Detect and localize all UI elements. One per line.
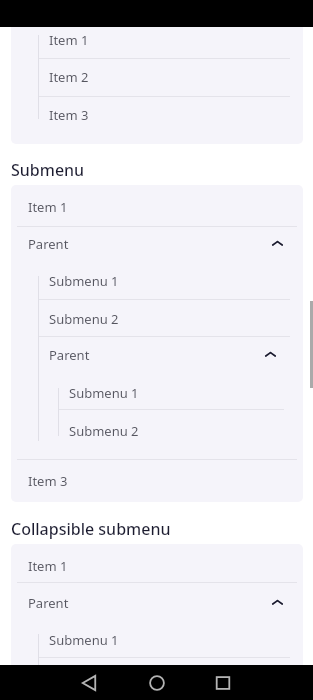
button[interactable]: Home bbox=[143, 669, 171, 697]
staticText: Submenu 1 bbox=[69, 384, 139, 402]
button[interactable]: Submenu 1 bbox=[11, 621, 303, 658]
button[interactable]: Submenu 1 bbox=[11, 374, 303, 411]
button[interactable]: Parent bbox=[11, 225, 303, 262]
staticText: Submenu 1 bbox=[49, 272, 119, 290]
staticText: Submenu 2 bbox=[69, 422, 139, 440]
button[interactable]: Parent bbox=[11, 336, 303, 373]
button[interactable]: Submenu 1 bbox=[11, 262, 303, 299]
staticText: Item 1 bbox=[28, 198, 68, 216]
button[interactable]: Back bbox=[75, 669, 103, 697]
button[interactable]: Item 3 bbox=[11, 96, 303, 133]
staticText: Item 1 bbox=[49, 31, 89, 49]
staticText: Item 1 bbox=[28, 557, 68, 575]
button[interactable]: Submenu 2 bbox=[11, 300, 303, 337]
staticText: Submenu bbox=[11, 159, 85, 181]
button[interactable]: Item 2 bbox=[11, 58, 303, 95]
staticText: Submenu 1 bbox=[49, 631, 119, 649]
staticText: Parent bbox=[28, 235, 69, 253]
button[interactable]: Item 1 bbox=[11, 188, 303, 225]
button[interactable]: Parent bbox=[11, 584, 303, 621]
staticText: Item 2 bbox=[49, 68, 89, 86]
staticText: Collapsible submenu bbox=[11, 518, 171, 540]
button[interactable]: Recent apps bbox=[209, 669, 237, 697]
button[interactable]: Item 1 bbox=[11, 547, 303, 584]
staticText: Parent bbox=[28, 594, 69, 612]
staticText: Parent bbox=[49, 346, 90, 364]
button[interactable]: Submenu 2 bbox=[11, 412, 303, 449]
button[interactable]: Item 3 bbox=[11, 462, 303, 499]
staticText: Item 3 bbox=[49, 106, 89, 124]
staticText: Submenu 2 bbox=[49, 310, 119, 328]
staticText: Item 3 bbox=[28, 472, 68, 490]
button[interactable]: Item 1 bbox=[11, 21, 303, 58]
